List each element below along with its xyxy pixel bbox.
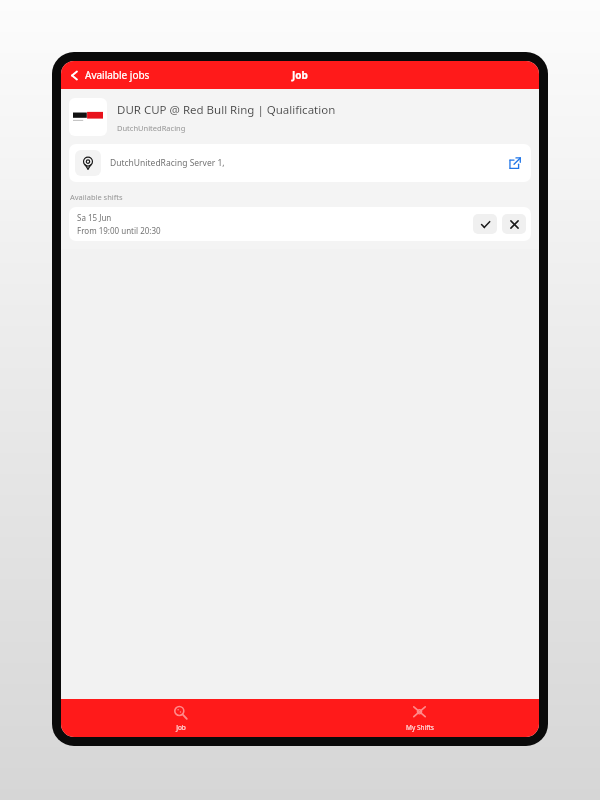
- staticText: Available shifts: [70, 192, 123, 202]
- staticText: From 19:00 until 20:30: [77, 225, 161, 236]
- button[interactable]: Available jobs: [61, 64, 158, 86]
- button[interactable]: Open external link: [505, 153, 525, 173]
- staticText: DutchUnitedRacing: [117, 123, 186, 133]
- button[interactable]: Sa 15 Jun: [69, 207, 531, 241]
- staticText: Job: [292, 68, 308, 82]
- staticText: Job: [176, 723, 186, 732]
- staticText: DUR CUP @ Red Bull Ring | Qualification: [117, 102, 336, 118]
- button[interactable]: DutchUnitedRacing Server 1,: [69, 144, 531, 182]
- button[interactable]: Job: [61, 701, 300, 736]
- staticText: DutchUnitedRacing Server 1,: [110, 157, 505, 169]
- staticText: Sa 15 Jun: [77, 212, 112, 223]
- button[interactable]: My Shifts: [300, 701, 539, 736]
- staticText: Available jobs: [85, 68, 150, 82]
- staticText: My Shifts: [406, 723, 434, 732]
- button[interactable]: Accept shift: [473, 214, 497, 234]
- button[interactable]: Decline shift: [502, 214, 526, 234]
